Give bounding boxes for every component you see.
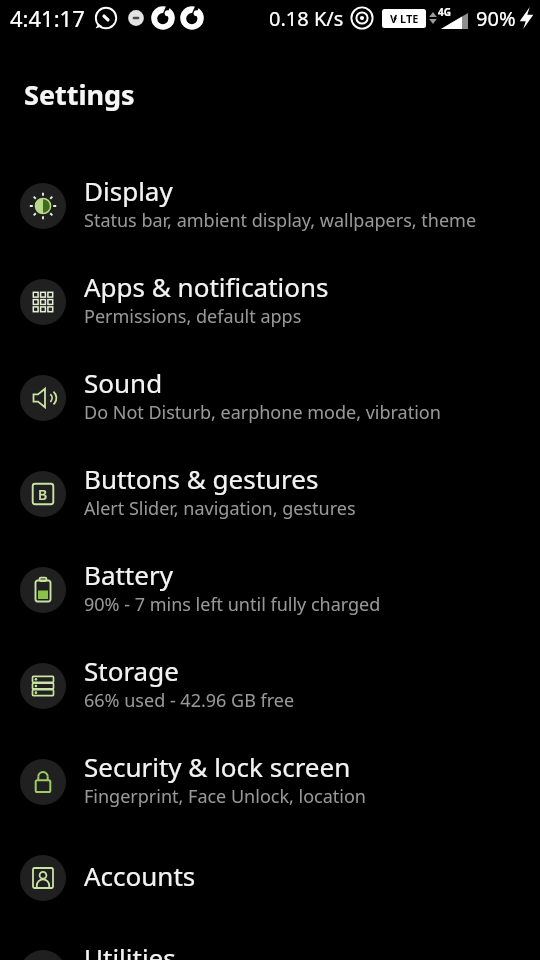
staticText: 4:41:17: [10, 3, 85, 33]
staticText: Alert Slider, navigation, gestures: [84, 496, 356, 521]
button[interactable]: B: [0, 446, 540, 542]
staticText: Security & lock screen: [84, 749, 351, 784]
staticText: Battery: [84, 557, 173, 592]
button[interactable]: Security & lock screen: [0, 734, 540, 830]
button[interactable]: Utilities: [0, 925, 540, 960]
staticText: Accounts: [84, 858, 196, 893]
button[interactable]: Sound: [0, 350, 540, 446]
staticText: Utilities: [84, 940, 176, 960]
staticText: 90%: [476, 5, 516, 32]
staticText: Settings: [24, 76, 135, 113]
button[interactable]: Battery: [0, 542, 540, 638]
staticText: Display: [84, 173, 173, 208]
staticText: 90% - 7 mins left until fully charged: [84, 592, 381, 617]
staticText: Status bar, ambient display, wallpapers,…: [84, 208, 477, 233]
staticText: B: [38, 485, 48, 504]
button[interactable]: Accounts: [0, 830, 540, 926]
staticText: Sound: [84, 365, 163, 400]
staticText: Buttons & gestures: [84, 461, 319, 496]
staticText: 66% used - 42.96 GB free: [84, 688, 295, 713]
button[interactable]: Storage: [0, 638, 540, 734]
staticText: 4G: [438, 5, 451, 19]
staticText: Do Not Disturb, earphone mode, vibration: [84, 400, 441, 425]
staticText: Storage: [84, 653, 179, 688]
staticText: V LTE: [390, 11, 419, 26]
staticText: Fingerprint, Face Unlock, location: [84, 784, 366, 809]
button[interactable]: Apps & notifications: [0, 254, 540, 350]
button[interactable]: Display: [0, 158, 540, 254]
staticText: 0.18 K/s: [269, 5, 344, 32]
staticText: Permissions, default apps: [84, 304, 302, 329]
staticText: Apps & notifications: [84, 269, 329, 304]
